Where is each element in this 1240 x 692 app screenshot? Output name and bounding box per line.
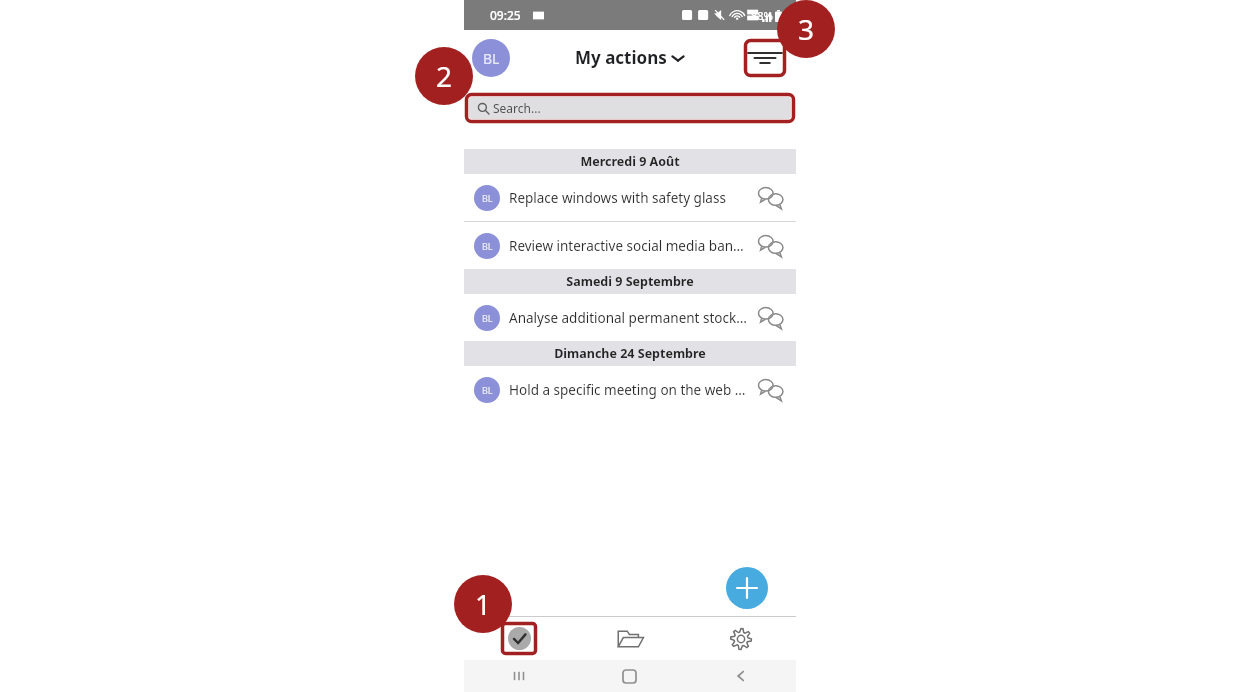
- button[interactable]: Comments: [756, 303, 786, 333]
- staticText: 1: [475, 585, 492, 623]
- button[interactable]: BL: [464, 366, 796, 413]
- staticText: 3: [798, 10, 815, 48]
- staticText: Analyse additional permanent stock a…: [509, 309, 750, 327]
- staticText: 2: [436, 57, 453, 95]
- staticText: Replace windows with safety glass: [509, 189, 750, 207]
- button[interactable]: BL: [464, 294, 796, 341]
- staticText: Dimanche 24 Septembre: [554, 345, 706, 362]
- button[interactable]: Settings: [685, 617, 796, 660]
- staticText: Review interactive social media bann…: [509, 237, 750, 255]
- button[interactable]: Comments: [756, 375, 786, 405]
- staticText: Samedi 9 Septembre: [566, 273, 694, 290]
- button[interactable]: Projects: [574, 617, 685, 660]
- staticText: BL: [482, 384, 493, 396]
- button[interactable]: BL: [464, 174, 796, 221]
- button[interactable]: Add action: [726, 567, 768, 609]
- button[interactable]: Comments: [756, 231, 786, 261]
- button[interactable]: BL: [464, 222, 796, 269]
- staticText: BL: [482, 312, 493, 324]
- staticText: BL: [482, 192, 493, 204]
- staticText: 09:25: [490, 7, 521, 23]
- button[interactable]: My actions: [464, 617, 574, 660]
- button[interactable]: BL: [472, 39, 510, 77]
- button[interactable]: Search...: [465, 93, 795, 123]
- staticText: My actions: [575, 46, 667, 69]
- button[interactable]: My actions: [575, 46, 685, 69]
- staticText: Mercredi 9 Août: [580, 153, 680, 170]
- button[interactable]: Comments: [756, 183, 786, 213]
- button[interactable]: Filter: [744, 39, 786, 77]
- staticText: 88%: [751, 8, 773, 23]
- staticText: BL: [482, 240, 493, 252]
- staticText: Search...: [493, 100, 541, 116]
- staticText: Hold a specific meeting on the web p…: [509, 381, 750, 399]
- staticText: BL: [483, 49, 500, 68]
